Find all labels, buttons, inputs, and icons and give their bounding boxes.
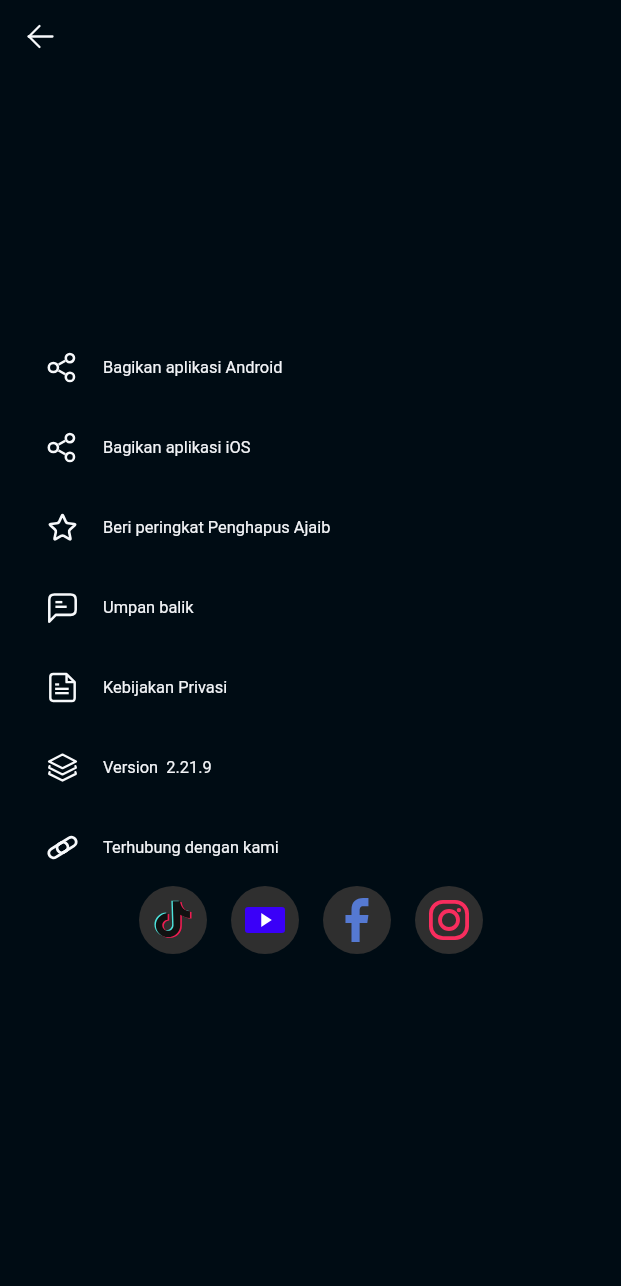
button[interactable]: Bagikan aplikasi Android — [0, 327, 621, 407]
button[interactable]: Instagram — [415, 886, 483, 954]
button[interactable]: TikTok — [139, 886, 207, 954]
staticText: Kebijakan Privasi — [103, 678, 228, 697]
staticText: Terhubung dengan kami — [103, 838, 279, 857]
button[interactable]: Back — [16, 12, 64, 60]
button[interactable]: YouTube — [231, 886, 299, 954]
button[interactable]: Version 2.21.9 — [0, 727, 621, 807]
staticText: Umpan balik — [103, 598, 194, 617]
button[interactable]: Facebook — [323, 886, 391, 954]
staticText: Bagikan aplikasi iOS — [103, 438, 251, 457]
staticText: Beri peringkat Penghapus Ajaib — [103, 518, 331, 537]
button[interactable]: Umpan balik — [0, 567, 621, 647]
button[interactable]: Kebijakan Privasi — [0, 647, 621, 727]
button[interactable]: Bagikan aplikasi iOS — [0, 407, 621, 487]
button[interactable]: Beri peringkat Penghapus Ajaib — [0, 487, 621, 567]
button[interactable]: Terhubung dengan kami — [0, 807, 621, 887]
staticText: Bagikan aplikasi Android — [103, 358, 283, 377]
staticText: Version 2.21.9 — [103, 758, 212, 777]
